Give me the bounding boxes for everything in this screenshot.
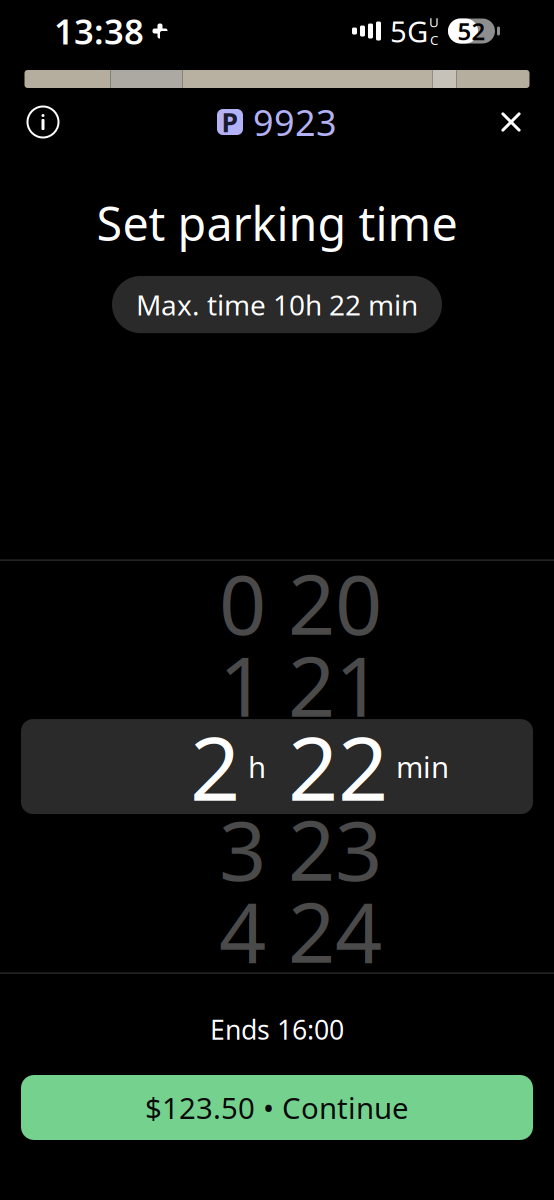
staticText: 52 [457, 15, 485, 47]
staticText: Max. time 10h 22 min [136, 286, 418, 323]
staticText: 20 [288, 548, 382, 657]
staticText: C [430, 31, 438, 49]
staticText: 1 [219, 630, 266, 739]
staticText: 24 [288, 876, 382, 985]
staticText: 2 [190, 708, 240, 825]
staticText: 9923 [253, 98, 337, 146]
staticText: U [429, 13, 439, 31]
staticText: 21 [288, 630, 382, 739]
staticText: 5G [390, 11, 428, 50]
staticText: 0 [219, 548, 266, 657]
staticText: $123.50 • Continue [145, 1088, 409, 1127]
staticText: 4 [219, 876, 266, 985]
staticText: 13:38 [54, 8, 144, 54]
button[interactable]: $123.50 • Continue [21, 1075, 533, 1140]
button[interactable]: P [209, 92, 345, 152]
staticText: 23 [288, 794, 382, 903]
staticText: min [396, 747, 449, 786]
staticText: P [221, 104, 238, 140]
button[interactable]: Information [15, 94, 71, 150]
staticText: Set parking time [96, 192, 457, 254]
button[interactable]: Close [483, 94, 539, 150]
staticText: h [248, 747, 266, 786]
staticText: Ends 16:00 [210, 1012, 344, 1047]
staticText: 22 [288, 708, 388, 825]
staticText: 3 [219, 794, 266, 903]
